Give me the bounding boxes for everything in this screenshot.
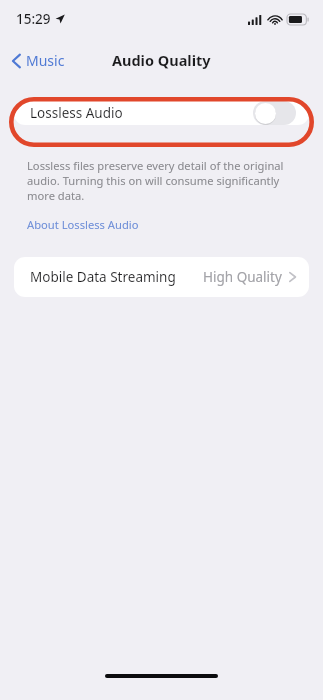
staticText: High Quality [203, 268, 282, 286]
button[interactable]: Lossless Audio [14, 101, 309, 125]
button[interactable]: Lossless Audio toggle [253, 101, 296, 125]
staticText: Music [26, 51, 65, 70]
staticText: 15:29 [16, 10, 51, 28]
button[interactable]: Music [8, 47, 69, 74]
staticText: Lossless Audio [30, 104, 123, 122]
staticText: Audio Quality [112, 50, 211, 70]
staticText: Lossless files preserve every detail of … [27, 158, 296, 203]
staticText: About Lossless Audio [27, 217, 139, 232]
staticText: Mobile Data Streaming [30, 268, 176, 286]
button[interactable]: About Lossless Audio [27, 217, 139, 232]
button[interactable]: Mobile Data Streaming [14, 257, 309, 297]
